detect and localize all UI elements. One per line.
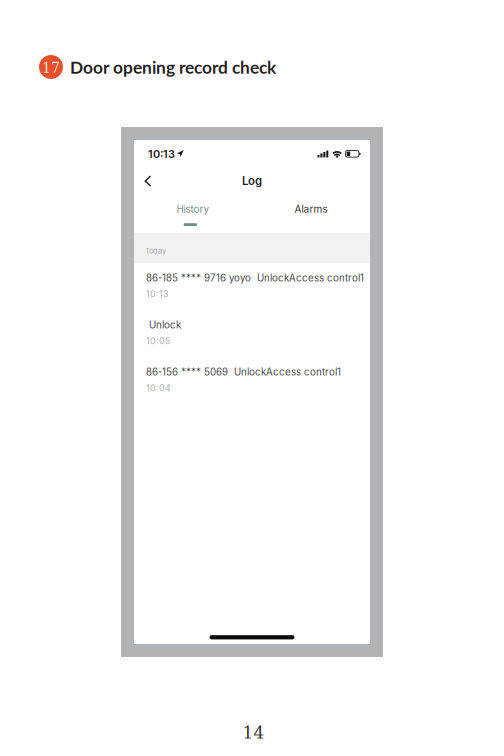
staticText: 10:13 <box>148 147 175 161</box>
button[interactable]: Back <box>136 169 160 193</box>
staticText: Door opening record check <box>70 57 276 77</box>
staticText: Log <box>242 174 262 188</box>
staticText: 14 <box>242 723 264 743</box>
button[interactable]: Alarms <box>252 194 370 233</box>
staticText: Unlock <box>146 319 181 331</box>
button[interactable]: History <box>134 194 252 233</box>
staticText: History <box>176 203 209 215</box>
staticText: Alarms <box>294 203 327 215</box>
staticText: 17 <box>42 60 60 76</box>
button[interactable]: 86-156 **** 5069 UnlockAccess control1 <box>134 357 370 404</box>
staticText: 10:13 <box>146 289 168 299</box>
staticText: 10:05 <box>146 336 170 346</box>
button[interactable]: Unlock <box>134 310 370 357</box>
staticText: 10:04 <box>146 383 171 393</box>
button[interactable]: 86-185 **** 9716 yoyo UnlockAccess contr… <box>134 263 370 310</box>
staticText: 86-156 **** 5069 UnlockAccess control1 <box>146 366 341 378</box>
staticText: Today <box>145 246 166 255</box>
staticText: 86-185 **** 9716 yoyo UnlockAccess contr… <box>146 272 364 284</box>
